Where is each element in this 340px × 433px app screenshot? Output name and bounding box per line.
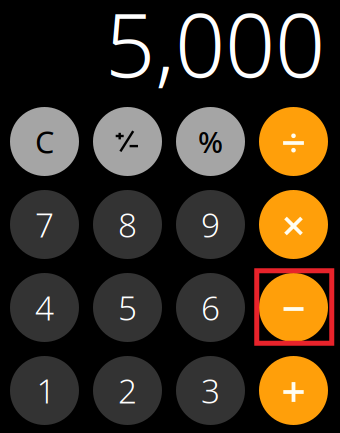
staticText: C — [35, 121, 54, 162]
button[interactable]: Multiply — [259, 190, 328, 259]
staticText: 5 — [118, 285, 137, 330]
button[interactable]: Add — [259, 356, 328, 425]
staticText: 8 — [118, 202, 137, 247]
staticText: 9 — [201, 202, 220, 247]
button[interactable]: Subtract — [259, 273, 328, 342]
staticText: 7 — [35, 202, 54, 247]
button[interactable]: 9 — [176, 190, 245, 259]
staticText: 4 — [35, 285, 54, 330]
button[interactable]: 2 — [93, 356, 162, 425]
button[interactable]: 6 — [176, 273, 245, 342]
button[interactable]: 4 — [10, 273, 79, 342]
button[interactable]: C — [10, 107, 79, 176]
staticText: 3 — [201, 368, 220, 413]
button[interactable]: Divide — [259, 107, 328, 176]
staticText: 5,000 — [105, 0, 325, 101]
staticText: 1 — [36, 368, 55, 413]
button[interactable]: Plus minus — [93, 107, 162, 176]
button[interactable]: 1 — [10, 356, 79, 425]
button[interactable]: % — [176, 107, 245, 176]
button[interactable]: 5 — [93, 273, 162, 342]
staticText: 6 — [201, 285, 220, 330]
button[interactable]: 3 — [176, 356, 245, 425]
staticText: % — [198, 122, 223, 161]
staticText: 2 — [118, 368, 137, 413]
button[interactable]: 7 — [10, 190, 79, 259]
button[interactable]: 8 — [93, 190, 162, 259]
